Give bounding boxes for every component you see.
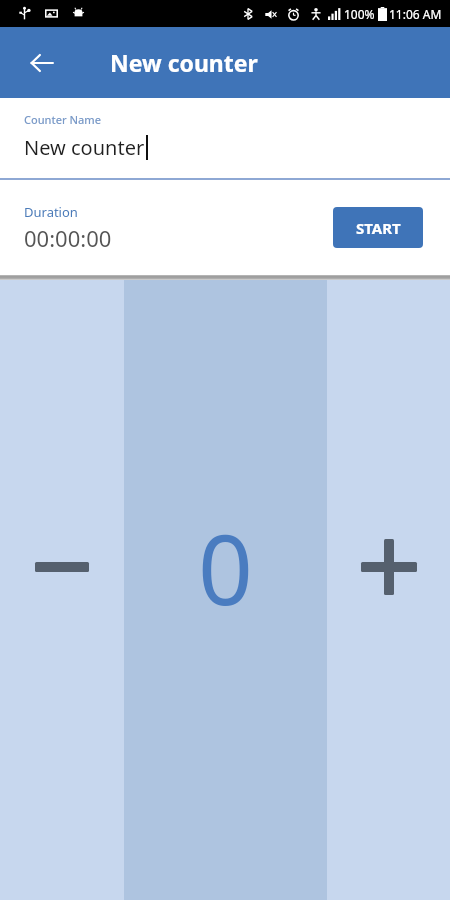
staticText: New counter xyxy=(110,47,258,78)
staticText: Counter Name xyxy=(24,112,102,127)
button[interactable]: Increment xyxy=(327,280,450,900)
button[interactable]: Decrement xyxy=(0,280,124,900)
staticText: START xyxy=(356,218,401,238)
button[interactable]: START xyxy=(333,207,423,248)
staticText: 11:06 AM xyxy=(389,6,442,22)
staticText: New counter xyxy=(24,134,145,161)
button[interactable]: Back xyxy=(20,41,64,85)
staticText: 100% xyxy=(344,6,375,22)
staticText: 00:00:00 xyxy=(24,223,112,253)
staticText: Duration xyxy=(24,203,78,221)
staticText: 0 xyxy=(198,502,253,633)
